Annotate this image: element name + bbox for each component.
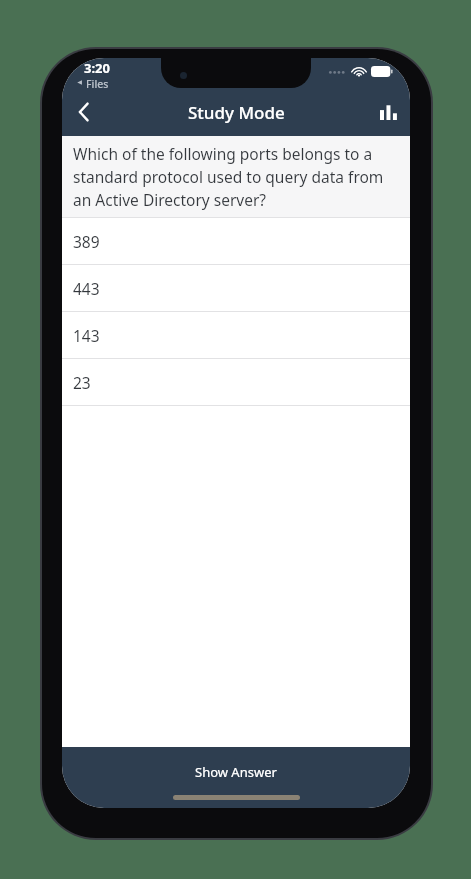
button[interactable]: 443 bbox=[62, 265, 410, 312]
staticText: 143 bbox=[73, 325, 100, 346]
button[interactable]: 389 bbox=[62, 218, 410, 265]
button[interactable]: Statistics bbox=[366, 90, 410, 134]
staticText: 23 bbox=[73, 372, 91, 393]
button[interactable]: 23 bbox=[62, 359, 410, 406]
staticText: Study Mode bbox=[188, 101, 285, 124]
button[interactable]: Show Answer bbox=[62, 747, 410, 808]
staticText: 389 bbox=[73, 231, 100, 252]
staticText: Show Answer bbox=[195, 763, 277, 781]
staticText: 443 bbox=[73, 278, 100, 299]
button[interactable]: 143 bbox=[62, 312, 410, 359]
staticText: Files bbox=[86, 77, 109, 88]
button[interactable]: Back bbox=[62, 90, 106, 134]
staticText: 3:20 bbox=[84, 59, 110, 77]
staticText: Which of the following ports belongs to … bbox=[73, 143, 399, 211]
